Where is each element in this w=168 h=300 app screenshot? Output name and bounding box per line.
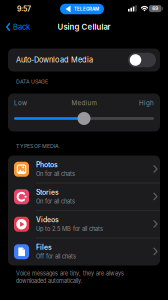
staticText: Using Cellular <box>57 22 110 32</box>
staticText: 69 <box>152 6 158 11</box>
staticText: TELEGRAM <box>74 6 99 12</box>
staticText: Videos <box>36 216 59 224</box>
staticText: Photos <box>36 161 58 169</box>
staticText: DATA USAGE <box>16 78 48 85</box>
staticText: Medium <box>71 99 96 107</box>
staticText: Files <box>36 243 52 251</box>
staticText: On for all chats <box>36 170 75 177</box>
staticText: On for all chats <box>36 198 75 205</box>
staticText: Back <box>13 22 30 32</box>
staticText: downloaded automatically. <box>16 278 83 284</box>
staticText: Up to 2.5 MB for all chats <box>36 225 103 232</box>
button[interactable] <box>8 108 160 128</box>
staticText: High <box>139 99 154 107</box>
staticText: Low <box>14 99 27 107</box>
button[interactable]: Files <box>8 238 160 265</box>
staticText: TYPES OF MEDIA <box>16 143 59 149</box>
staticText: Stories <box>36 188 59 196</box>
button[interactable]: Videos <box>8 210 160 238</box>
staticText: 9:57 <box>17 5 31 13</box>
staticText: Auto-Download Media <box>16 55 93 64</box>
button[interactable]: Stories <box>8 183 160 210</box>
staticText: Voice messages are tiny, they are always <box>16 270 124 277</box>
button[interactable]: Photos <box>8 155 160 183</box>
button[interactable]: TELEGRAM <box>60 4 104 14</box>
button[interactable]: Back <box>3 19 43 35</box>
button[interactable]: Auto-Download Media <box>8 48 160 71</box>
staticText: Off for all chats <box>36 253 76 260</box>
